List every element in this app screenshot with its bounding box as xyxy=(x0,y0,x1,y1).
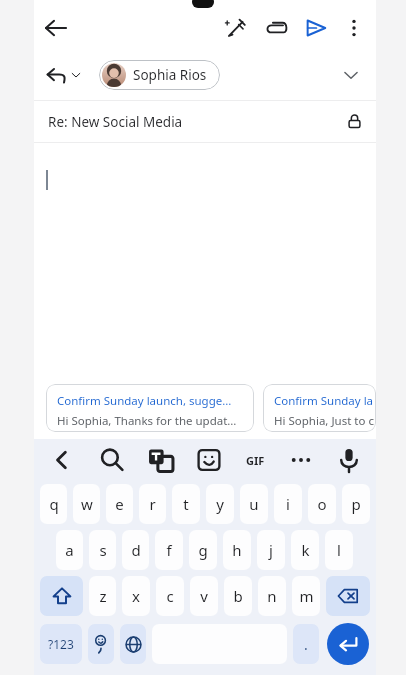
staticText: ?123 xyxy=(48,636,74,652)
button[interactable]: y xyxy=(206,484,234,524)
button[interactable]: u xyxy=(240,484,268,524)
staticText: g xyxy=(198,540,208,560)
button[interactable]: d xyxy=(122,530,149,570)
staticText: t xyxy=(183,494,189,514)
button[interactable]: More options xyxy=(336,10,372,46)
button[interactable]: t xyxy=(172,484,200,524)
button[interactable]: z xyxy=(89,576,116,616)
button[interactable]: Attach file xyxy=(256,8,296,48)
staticText: z xyxy=(99,586,107,606)
button[interactable]: Expand recipients xyxy=(332,56,370,94)
button[interactable]: Collapse toolbar xyxy=(42,440,82,480)
staticText: i xyxy=(286,494,290,514)
button[interactable]: j xyxy=(257,530,285,570)
button[interactable]: n xyxy=(258,576,286,616)
button[interactable]: a xyxy=(56,530,83,570)
staticText: e xyxy=(115,494,124,514)
staticText: m xyxy=(299,586,314,606)
staticText: o xyxy=(317,494,327,514)
button[interactable]: Translate xyxy=(142,441,180,479)
staticText: c xyxy=(166,586,174,606)
button[interactable]: Sophia Rios xyxy=(99,60,220,90)
staticText: l xyxy=(337,540,341,560)
button[interactable]: e xyxy=(106,484,133,524)
button[interactable]: k xyxy=(291,530,319,570)
button[interactable]: Voice input xyxy=(330,441,368,479)
button[interactable]: Backspace xyxy=(326,576,370,616)
button[interactable]: Reply options xyxy=(42,61,85,89)
staticText: Re: New Social Media Campaign: Launching… xyxy=(48,113,197,131)
staticText: y xyxy=(216,494,224,514)
staticText: GIF xyxy=(246,453,265,468)
staticText: d xyxy=(131,540,141,560)
staticText: j xyxy=(269,540,273,560)
button[interactable]: g xyxy=(189,530,217,570)
staticText: b xyxy=(233,586,243,606)
staticText: Hi Sophia, Just to c xyxy=(274,413,374,429)
button[interactable]: Re: New Social Media Campaign: Launching… xyxy=(34,101,376,142)
staticText: h xyxy=(232,540,242,560)
staticText: x xyxy=(132,586,140,606)
button[interactable]: i xyxy=(274,484,302,524)
button[interactable]: Confirm Sunday la xyxy=(263,384,376,432)
staticText: v xyxy=(200,586,208,606)
button[interactable]: r xyxy=(139,484,166,524)
button[interactable]: s xyxy=(89,530,116,570)
staticText: Hi Sophia, Thanks for the updat… xyxy=(57,413,237,429)
staticText: Sophia Rios xyxy=(133,66,207,84)
staticText: k xyxy=(301,540,310,560)
button[interactable]: Change language xyxy=(120,624,146,664)
staticText: n xyxy=(267,586,277,606)
staticText: q xyxy=(49,494,59,514)
button[interactable]: q xyxy=(40,484,67,524)
button[interactable]: w xyxy=(73,484,100,524)
button[interactable]: l xyxy=(325,530,353,570)
button[interactable]: b xyxy=(224,576,252,616)
button[interactable]: Shift xyxy=(40,576,83,616)
button[interactable]: Emoji xyxy=(88,624,114,664)
staticText: a xyxy=(65,540,74,560)
staticText: s xyxy=(99,540,107,560)
button[interactable]: Search xyxy=(93,441,131,479)
button[interactable]: h xyxy=(223,530,251,570)
button[interactable]: o xyxy=(308,484,336,524)
button[interactable]: c xyxy=(156,576,184,616)
button[interactable]: v xyxy=(190,576,218,616)
staticText: r xyxy=(149,494,156,514)
button[interactable]: x xyxy=(122,576,150,616)
staticText: u xyxy=(249,494,259,514)
staticText: f xyxy=(166,540,172,560)
button[interactable]: ?123 xyxy=(40,624,82,664)
button[interactable]: Assist write xyxy=(216,8,256,48)
staticText: Confirm Sunday la xyxy=(274,393,374,409)
button[interactable]: p xyxy=(342,484,370,524)
staticText: Confirm Sunday launch, sugge… xyxy=(57,393,232,409)
button[interactable]: Back xyxy=(34,6,78,50)
staticText: w xyxy=(81,494,93,514)
button[interactable]: Stickers xyxy=(190,441,228,479)
button[interactable]: Send xyxy=(296,8,336,48)
button[interactable]: m xyxy=(292,576,320,616)
button[interactable]: GIF xyxy=(238,448,272,472)
button[interactable]: Confirm Sunday launch, sugge… xyxy=(46,384,254,432)
staticText: p xyxy=(351,494,361,514)
button[interactable]: . xyxy=(293,624,319,664)
button[interactable]: Enter xyxy=(327,623,369,665)
staticText: . xyxy=(304,635,308,654)
button[interactable]: f xyxy=(155,530,183,570)
button[interactable]: More xyxy=(282,441,320,479)
